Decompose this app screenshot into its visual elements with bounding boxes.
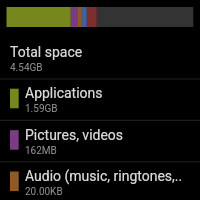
button[interactable]: Audio (music, ringtones,.., 20.00KB bbox=[0, 161, 200, 200]
staticText: 4.54GB bbox=[10, 62, 43, 74]
staticText: 20.00KB bbox=[25, 186, 63, 198]
staticText: Pictures, videos bbox=[25, 127, 124, 143]
button[interactable]: Applications, 1.59GB bbox=[0, 78, 200, 119]
staticText: Applications bbox=[25, 85, 103, 101]
staticText: 162MB bbox=[25, 145, 57, 157]
staticText: Total space bbox=[10, 44, 83, 60]
button[interactable]: Total space, 4.54GB bbox=[0, 37, 200, 78]
staticText: Audio (music, ringtones,.. bbox=[25, 168, 183, 184]
staticText: 1.59GB bbox=[25, 103, 58, 115]
button[interactable]: Pictures, videos, 162MB bbox=[0, 120, 200, 161]
